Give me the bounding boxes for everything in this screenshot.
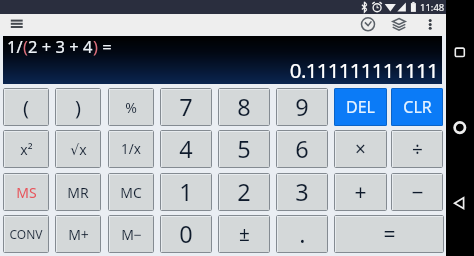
button[interactable]: Back (446, 189, 474, 217)
staticText: 11:48 (420, 1, 445, 14)
staticText: 5 (237, 133, 251, 165)
staticText: . (299, 218, 306, 250)
staticText: M− (121, 225, 142, 244)
button[interactable]: . (276, 215, 328, 253)
staticText: CLR (403, 96, 432, 118)
staticText: 7 (179, 91, 193, 123)
staticText: ) (75, 94, 81, 121)
button[interactable]: ± (218, 215, 270, 253)
staticText: ± (239, 221, 250, 247)
button[interactable]: Home (446, 113, 474, 141)
button[interactable]: History (356, 14, 380, 35)
staticText: ( (23, 94, 29, 121)
button[interactable]: MR (55, 173, 101, 211)
staticText: 2 + 3 + 4 (28, 35, 93, 57)
staticText: + (354, 178, 367, 207)
staticText: 0 (179, 218, 193, 250)
button[interactable]: ) (55, 88, 101, 126)
staticText: 1/ (7, 35, 23, 57)
button[interactable]: 0 (160, 215, 212, 253)
staticText: 3 (295, 176, 309, 208)
button[interactable]: DEL (334, 88, 387, 126)
button[interactable]: MC (108, 173, 154, 211)
staticText: MR (67, 183, 89, 202)
button[interactable]: % (108, 88, 154, 126)
staticText: − (411, 178, 424, 207)
button[interactable]: More options (419, 14, 441, 35)
staticText: 1/x (121, 140, 141, 158)
button[interactable]: CONV (3, 215, 49, 253)
staticText: 2 (237, 176, 251, 208)
staticText: % (125, 98, 137, 117)
staticText: MS (16, 183, 37, 202)
button[interactable]: x² (3, 130, 49, 168)
staticText: = (98, 35, 112, 57)
staticText: M+ (68, 225, 89, 244)
staticText: x² (20, 140, 33, 159)
button[interactable]: × (334, 130, 387, 168)
staticText: = (383, 220, 396, 249)
staticText: 6 (295, 133, 309, 165)
button[interactable]: √x (55, 130, 101, 168)
button[interactable]: MS (3, 173, 49, 211)
button[interactable]: CLR (391, 88, 443, 126)
button[interactable]: ÷ (391, 130, 443, 168)
staticText: 4 (179, 133, 193, 165)
staticText: MC (120, 183, 142, 202)
button[interactable]: 8 (218, 88, 270, 126)
staticText: × (355, 136, 366, 162)
button[interactable]: ( (3, 88, 49, 126)
button[interactable]: Menu (4, 14, 29, 35)
button[interactable]: Recents (446, 38, 474, 66)
button[interactable]: = (334, 215, 444, 253)
button[interactable]: + (334, 173, 387, 211)
button[interactable]: M− (108, 215, 154, 253)
button[interactable]: 3 (276, 173, 328, 211)
staticText: 9 (295, 91, 309, 123)
staticText: 1 (179, 176, 193, 208)
staticText: 0.111111111111 (0, 56, 438, 84)
button[interactable]: 1/x (108, 130, 154, 168)
button[interactable]: 9 (276, 88, 328, 126)
staticText: 8 (237, 91, 251, 123)
button[interactable]: − (391, 173, 443, 211)
button[interactable]: 1 (160, 173, 212, 211)
button[interactable]: 6 (276, 130, 328, 168)
staticText: √x (70, 140, 87, 159)
staticText: CONV (9, 226, 43, 242)
button[interactable]: Layers (387, 14, 411, 35)
staticText: ) (93, 35, 98, 57)
button[interactable]: 7 (160, 88, 212, 126)
button[interactable]: 2 (218, 173, 270, 211)
staticText: ÷ (412, 136, 423, 162)
button[interactable]: 4 (160, 130, 212, 168)
button[interactable]: M+ (55, 215, 101, 253)
staticText: DEL (346, 96, 375, 118)
button[interactable]: 5 (218, 130, 270, 168)
staticText: ( (23, 35, 28, 57)
